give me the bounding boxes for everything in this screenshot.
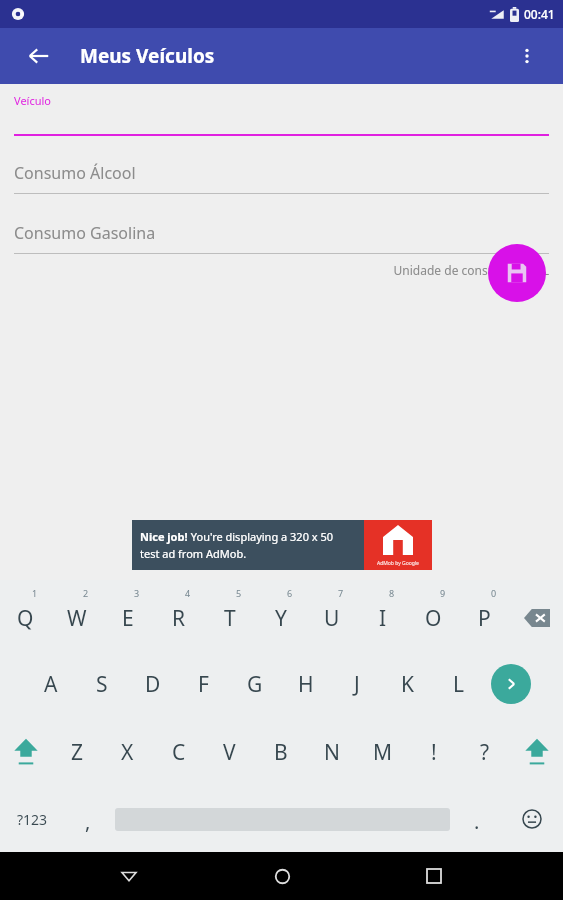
button[interactable]: L [433,650,484,718]
staticText: Unidade de consumo: KM/L [14,262,549,278]
button[interactable]: Emoji [500,786,563,852]
staticText: L [453,670,465,699]
button[interactable]: Consumo Gasolina [14,222,549,254]
button[interactable]: 4 [153,580,204,650]
button[interactable]: 1 [0,580,51,650]
button[interactable]: ! [408,718,459,786]
staticText: Consumo Álcool [14,162,136,184]
button[interactable]: 7 [306,580,357,650]
staticText: 5 [236,587,242,599]
staticText: 7 [338,587,344,599]
button[interactable]: Backspace [510,580,563,650]
staticText: B [274,738,288,767]
staticText: F [198,670,209,699]
button[interactable]: Consumo Álcool [14,162,549,194]
button[interactable]: Recents [410,852,458,900]
button[interactable]: . [453,786,500,852]
button[interactable]: M [357,718,408,786]
staticText: 0 [491,587,497,599]
staticText: Q [17,604,34,633]
button[interactable]: ?123 [0,786,64,852]
button[interactable]: 3 [102,580,153,650]
staticText: 9 [440,587,446,599]
staticText: S [96,670,108,699]
staticText: Consumo Gasolina [14,222,156,244]
staticText: ? [480,738,490,767]
button[interactable]: Save [488,244,546,302]
button[interactable]: Back [105,852,153,900]
staticText: K [401,670,414,699]
button[interactable]: Home [258,852,306,900]
staticText: 6 [287,587,293,599]
button[interactable]: V [204,718,255,786]
button[interactable]: Back [15,32,63,80]
staticText: 2 [83,587,89,599]
staticText: 8 [389,587,395,599]
staticText: R [172,604,186,633]
staticText: ?123 [17,810,48,829]
staticText: . [474,808,480,835]
button[interactable]: S [76,650,127,718]
staticText: H [298,670,314,699]
button[interactable]: 8 [357,580,408,650]
staticText: You're displaying a 320 x 50 [188,529,334,544]
staticText: J [354,670,360,699]
staticText: Nice job! [140,529,188,544]
button[interactable]: C [153,718,204,786]
button[interactable]: 9 [408,580,459,650]
button[interactable]: , [64,786,111,852]
staticText: G [247,670,263,699]
button[interactable]: 2 [51,580,102,650]
button[interactable]: Z [52,718,102,786]
staticText: E [122,604,134,633]
button[interactable]: K [382,650,433,718]
button[interactable]: J [331,650,382,718]
staticText: A [44,670,58,699]
staticText: , [85,808,91,835]
staticText: W [67,604,87,633]
staticText: 4 [185,587,191,599]
staticText: T [224,604,236,633]
button[interactable]: Nice job! [132,520,432,570]
button[interactable]: More options [503,32,551,80]
button[interactable]: 6 [255,580,306,650]
staticText: M [373,738,393,767]
staticText: 1 [32,587,38,599]
button[interactable]: Enter [484,650,537,718]
button[interactable]: 5 [204,580,255,650]
staticText: 00:41 [524,6,555,22]
staticText: N [324,738,340,767]
staticText: O [425,604,442,633]
staticText: X [121,738,134,767]
staticText: Y [275,604,287,633]
button[interactable]: F [178,650,229,718]
button[interactable] [111,786,453,852]
button[interactable]: Shift [510,718,563,786]
staticText: Z [71,738,84,767]
button[interactable]: D [127,650,178,718]
staticText: test ad from AdMob. [140,546,247,561]
staticText: U [324,604,340,633]
staticText: P [478,604,491,633]
button[interactable]: B [255,718,306,786]
staticText: 3 [134,587,140,599]
staticText: ! [431,738,437,767]
staticText: Meus Veículos [80,43,215,69]
button[interactable]: 0 [459,580,510,650]
staticText: I [379,604,387,633]
button[interactable]: ? [459,718,510,786]
button[interactable]: A [25,650,76,718]
staticText: D [145,670,161,699]
staticText: AdMob by Google [377,560,419,567]
button[interactable]: X [102,718,153,786]
staticText: Veículo [14,93,51,108]
button[interactable]: Shift [0,718,52,786]
staticText: C [172,738,186,767]
button[interactable]: G [229,650,280,718]
button[interactable]: N [306,718,357,786]
button[interactable]: H [280,650,331,718]
staticText: V [223,738,236,767]
